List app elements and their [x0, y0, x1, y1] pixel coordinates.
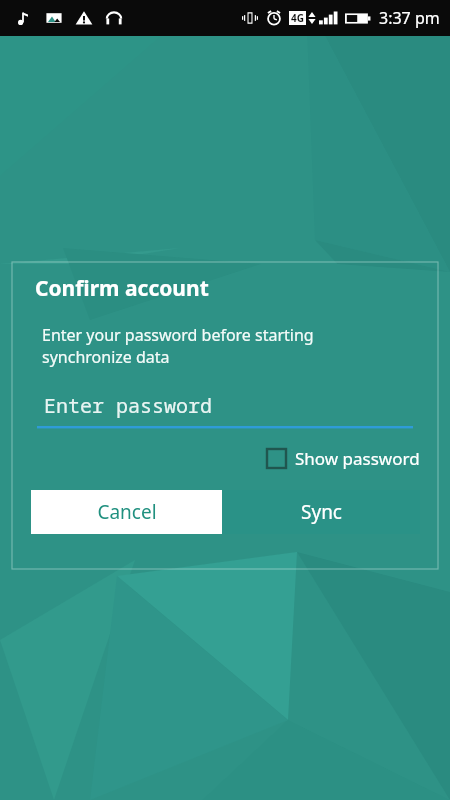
staticText: Enter your password before starting sync…	[42, 324, 314, 368]
staticText: Confirm account	[35, 274, 209, 303]
button[interactable]: Cancel	[31, 490, 222, 534]
staticText: 3:37 pm	[379, 7, 440, 29]
staticText: Cancel	[97, 499, 157, 525]
staticText: Sync	[301, 499, 342, 525]
staticText: Enter password	[44, 392, 212, 419]
button[interactable]: Show password	[267, 447, 420, 470]
button[interactable]: Enter password	[37, 392, 413, 429]
button[interactable]: Sync	[222, 490, 420, 534]
staticText: Show password	[295, 447, 420, 470]
staticText: 4G	[291, 11, 304, 25]
